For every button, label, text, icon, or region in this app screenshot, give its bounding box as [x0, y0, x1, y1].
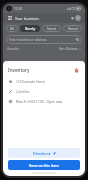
button[interactable]: 123 Example Street: [8, 79, 80, 84]
button[interactable]: Enter location or address: [6, 35, 82, 44]
button[interactable]: Recent: [63, 25, 82, 32]
button[interactable]: Saved: [42, 25, 61, 32]
staticText: Your locations: [15, 16, 69, 21]
button[interactable]: Reserve this item: [8, 160, 80, 170]
staticText: Inventory: [8, 67, 72, 73]
button[interactable]: All: [6, 25, 18, 32]
staticText: Directions: [33, 151, 51, 156]
button[interactable]: 2.4 miles: [8, 89, 80, 94]
staticText: Saved: [47, 27, 56, 31]
button[interactable]: Sort: Distance: [59, 47, 81, 51]
button[interactable]: Menu: [7, 15, 13, 21]
staticText: Sort: Distance: [59, 47, 78, 51]
button[interactable]: Directions: [8, 148, 80, 158]
staticText: 123 Example Street: [16, 80, 80, 84]
staticText: Reserve this item: [29, 163, 59, 168]
staticText: 12:30: [14, 7, 23, 11]
staticText: 2.4 miles: [16, 90, 80, 94]
staticText: Recent: [68, 27, 78, 31]
staticText: Mon-Fri 9:00-17:00 - Open now: [16, 100, 80, 104]
button[interactable]: Mon-Fri 9:00-17:00 - Open now: [8, 99, 80, 104]
staticText: 4 results: [7, 47, 19, 51]
button[interactable]: Nearby: [20, 25, 40, 32]
staticText: Nearby: [25, 27, 36, 31]
staticText: All: [10, 27, 14, 31]
button[interactable]: Sort: [69, 15, 75, 21]
staticText: Enter location or address: [9, 38, 76, 42]
button[interactable]: Delete: [72, 66, 80, 74]
button[interactable]: Map view: [75, 15, 81, 21]
